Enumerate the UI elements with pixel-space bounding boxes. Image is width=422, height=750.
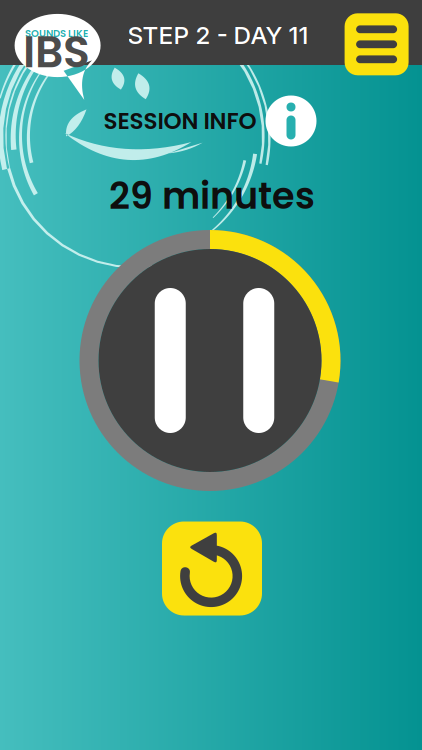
staticText: IBS: [23, 21, 90, 83]
staticText: STEP 2 - DAY 11: [127, 20, 308, 50]
button[interactable]: Menu: [345, 13, 409, 75]
staticText: 29 minutes: [109, 170, 315, 221]
button[interactable]: Restart: [162, 521, 262, 615]
staticText: SOUNDS LIKE: [25, 26, 88, 40]
button[interactable]: SESSION INFO: [103, 95, 316, 146]
staticText: SESSION INFO: [103, 105, 256, 137]
